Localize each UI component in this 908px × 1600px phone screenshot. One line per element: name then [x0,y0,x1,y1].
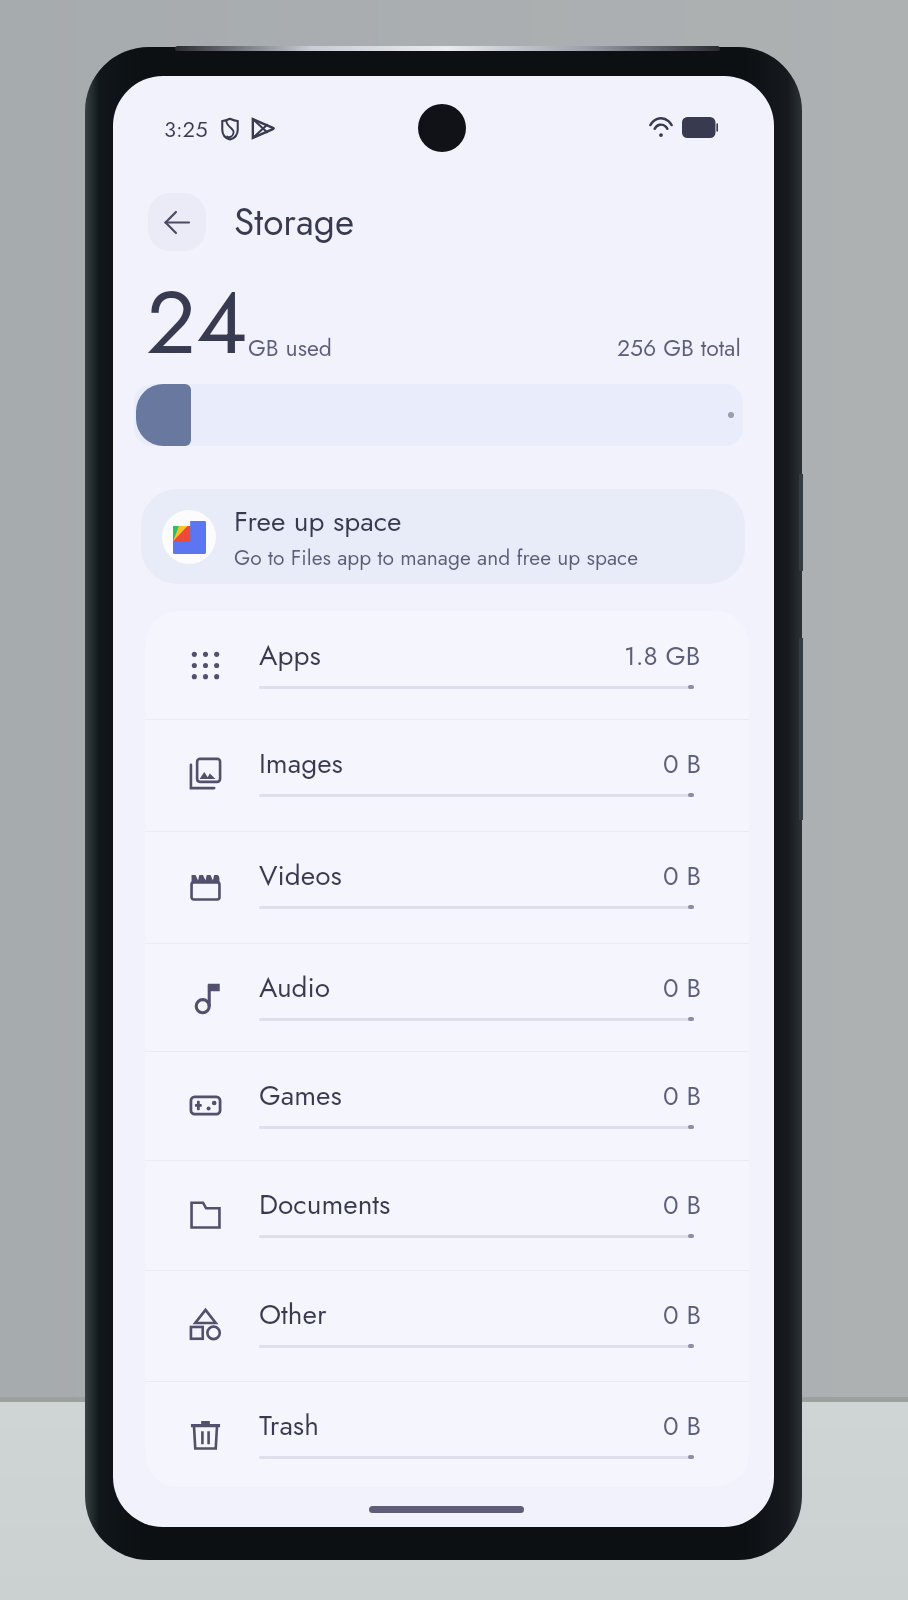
button[interactable]: Audio [145,943,749,1051]
staticText: Games [259,1075,342,1115]
staticText: 0 B [663,969,701,1007]
staticText: 0 B [663,857,701,895]
staticText: 0 B [663,1407,701,1445]
staticText: Documents [259,1184,391,1224]
button[interactable]: Back [148,193,206,251]
staticText: 256 GB total [617,331,741,364]
button[interactable]: Documents [145,1160,749,1270]
staticText: Trash [259,1405,319,1445]
staticText: Other [259,1294,327,1334]
button[interactable]: Free up space [141,489,745,584]
staticText: Go to Files app to manage and free up sp… [234,543,638,573]
button[interactable]: Other [145,1270,749,1381]
staticText: Free up space [234,501,402,541]
staticText: GB used [248,331,332,364]
staticText: Storage [234,195,354,248]
button[interactable]: Trash [145,1381,749,1487]
staticText: 3:25 [164,113,208,145]
button[interactable]: Games [145,1051,749,1160]
staticText: Images [259,743,343,783]
staticText: Audio [259,967,331,1007]
staticText: Apps [259,635,321,675]
button[interactable]: Apps [145,611,749,719]
staticText: 0 B [663,1077,701,1115]
staticText: 24 [146,259,248,386]
staticText: 1.8 GB [624,637,701,675]
staticText: 0 B [663,745,701,783]
staticText: 0 B [663,1296,701,1334]
button[interactable]: Videos [145,831,749,943]
button[interactable]: Images [145,719,749,831]
staticText: 0 B [663,1186,701,1224]
staticText: Videos [259,855,342,895]
